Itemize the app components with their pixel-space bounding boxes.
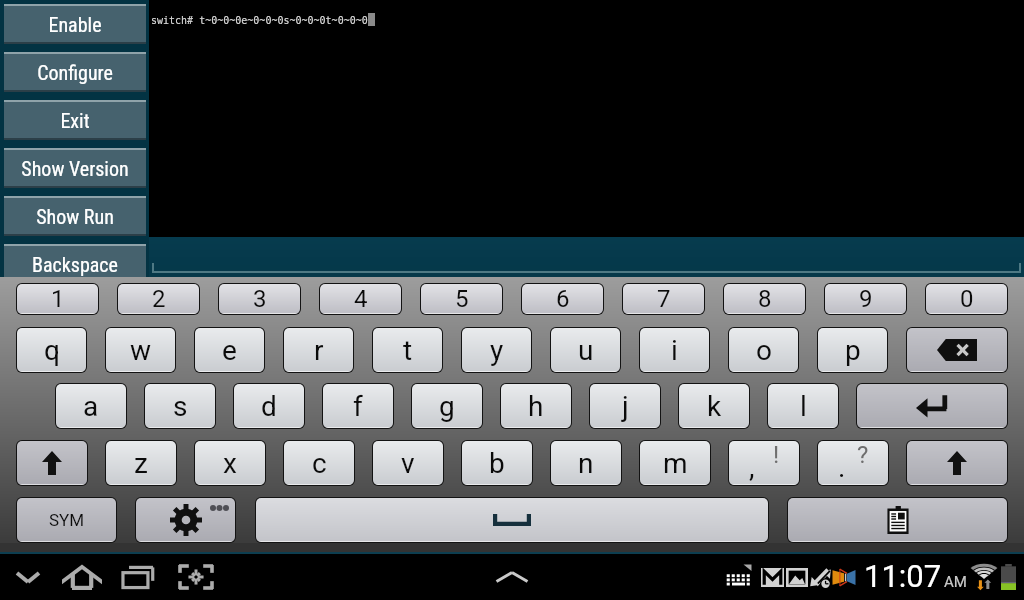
button[interactable]: Configure — [4, 52, 146, 92]
staticText: s — [173, 390, 188, 423]
staticText: f — [353, 390, 363, 423]
staticText: 6 — [556, 285, 570, 313]
button[interactable]: c — [284, 441, 354, 485]
button[interactable]: y — [462, 328, 531, 372]
button[interactable]: 7 — [623, 284, 704, 314]
staticText: . — [838, 451, 846, 484]
staticText: x — [223, 447, 237, 480]
button[interactable]: s — [145, 384, 215, 428]
button[interactable]: 4 — [320, 284, 401, 314]
staticText: a — [83, 390, 99, 423]
button[interactable]: Enable — [4, 4, 146, 44]
button[interactable]: Clipboard — [788, 498, 1007, 542]
button[interactable]: Shift — [907, 441, 1007, 485]
button[interactable]: k — [679, 384, 749, 428]
staticText: e — [222, 334, 237, 367]
staticText: r — [314, 334, 324, 367]
button[interactable]: Exit — [4, 100, 146, 140]
button[interactable]: u — [551, 328, 620, 372]
button[interactable]: Space — [256, 498, 768, 542]
button[interactable]: a — [56, 384, 126, 428]
button[interactable]: o — [729, 328, 798, 372]
staticText: Backspace — [32, 253, 118, 276]
staticText: 8 — [758, 285, 772, 313]
staticText: q — [44, 334, 60, 367]
button[interactable]: Recent apps — [111, 554, 165, 600]
button[interactable]: 1 — [17, 284, 98, 314]
staticText: Show Run — [36, 205, 114, 228]
staticText: 0 — [960, 285, 974, 313]
staticText: z — [134, 447, 148, 480]
staticText: AM — [944, 573, 967, 591]
staticText: i — [671, 334, 678, 367]
staticText: Configure — [37, 61, 113, 84]
staticText: p — [845, 334, 861, 367]
button[interactable]: r — [284, 328, 353, 372]
button[interactable]: 5 — [421, 284, 502, 314]
staticText: Show Version — [21, 157, 129, 180]
staticText: u — [578, 334, 594, 367]
button[interactable]: 0 — [926, 284, 1007, 314]
staticText: n — [578, 447, 594, 480]
staticText: 2 — [152, 285, 166, 313]
button[interactable]: Hide keyboard — [1, 554, 55, 600]
button[interactable]: d — [234, 384, 304, 428]
button[interactable]: 8 — [724, 284, 805, 314]
button[interactable]: 9 — [825, 284, 906, 314]
staticText: m — [663, 447, 688, 480]
staticText: Enable — [48, 13, 102, 36]
staticText: d — [261, 390, 277, 423]
button[interactable]: m — [640, 441, 710, 485]
button[interactable]: z — [106, 441, 176, 485]
button[interactable]: f — [323, 384, 393, 428]
button[interactable]: l — [768, 384, 838, 428]
staticText: y — [490, 334, 504, 367]
button[interactable]: ? — [818, 441, 888, 485]
button[interactable]: n — [551, 441, 621, 485]
button[interactable]: j — [590, 384, 660, 428]
staticText: g — [439, 390, 455, 423]
staticText: 7 — [657, 285, 671, 313]
button[interactable]: 6 — [522, 284, 603, 314]
staticText: Exit — [60, 109, 90, 132]
button[interactable]: Home — [55, 554, 109, 600]
staticText: 3 — [253, 285, 267, 313]
button[interactable]: Backspace — [907, 328, 1007, 372]
staticText: 5 — [455, 285, 469, 313]
button[interactable]: Shift — [17, 441, 87, 485]
staticText: c — [312, 447, 327, 480]
staticText: 4 — [354, 285, 368, 313]
button[interactable]: q — [17, 328, 86, 372]
button[interactable]: h — [501, 384, 571, 428]
staticText: 1 — [51, 285, 65, 313]
button[interactable]: w — [106, 328, 175, 372]
staticText: ? — [857, 441, 869, 469]
button[interactable]: e — [195, 328, 264, 372]
button[interactable]: v — [373, 441, 443, 485]
button[interactable]: b — [462, 441, 532, 485]
button[interactable]: t — [373, 328, 442, 372]
button[interactable]: x — [195, 441, 265, 485]
button[interactable]: 2 — [118, 284, 199, 314]
staticText: SYM — [49, 510, 85, 530]
staticText: o — [756, 334, 772, 367]
button[interactable]: p — [818, 328, 887, 372]
button[interactable]: Enter — [857, 384, 1007, 428]
staticText: h — [528, 390, 544, 423]
staticText: t — [403, 334, 413, 367]
button[interactable]: Shrink view — [169, 554, 223, 600]
staticText: 9 — [859, 285, 873, 313]
button[interactable]: 3 — [219, 284, 300, 314]
button[interactable]: i — [640, 328, 709, 372]
button[interactable]: g — [412, 384, 482, 428]
staticText: switch# t~0~0~0e~0~0~0s~0~0~0t~0~0~0 — [151, 15, 368, 27]
staticText: ! — [773, 441, 780, 469]
staticText: v — [401, 447, 415, 480]
button[interactable]: Input options — [136, 498, 235, 542]
button[interactable]: SYM — [17, 498, 116, 542]
button[interactable]: ! — [729, 441, 799, 485]
button[interactable]: Show Run — [4, 196, 146, 236]
staticText: j — [622, 390, 629, 423]
button[interactable]: Backspace — [4, 244, 146, 284]
button[interactable]: Show Version — [4, 148, 146, 188]
